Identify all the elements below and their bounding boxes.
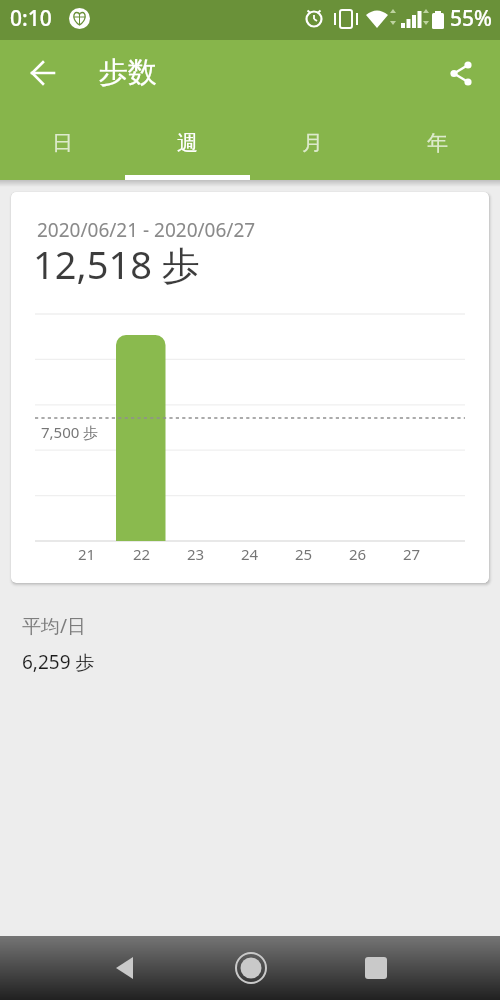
- staticText: 歩数: [99, 54, 157, 91]
- button[interactable]: 日: [0, 105, 125, 180]
- staticText: 日: [52, 130, 73, 156]
- staticText: 22: [133, 544, 151, 564]
- button[interactable]: [62, 936, 188, 1000]
- button[interactable]: [313, 936, 438, 1000]
- staticText: 年: [427, 130, 448, 156]
- button[interactable]: [188, 936, 313, 1000]
- staticText: 23: [187, 544, 205, 564]
- staticText: 月: [302, 130, 323, 156]
- staticText: 平均/日: [22, 613, 87, 639]
- staticText: 25: [295, 544, 313, 564]
- button[interactable]: 年: [375, 105, 500, 180]
- staticText: 55%: [450, 4, 492, 33]
- staticText: 6,259 歩: [22, 649, 95, 675]
- staticText: 12,518 歩: [33, 238, 200, 290]
- staticText: 2020/06/21 - 2020/06/27: [37, 217, 256, 243]
- staticText: 週: [177, 130, 198, 156]
- staticText: 0:10: [10, 4, 52, 33]
- staticText: 7,500 歩: [41, 422, 99, 442]
- staticText: 21: [78, 544, 96, 564]
- staticText: 27: [403, 544, 421, 564]
- staticText: 26: [349, 544, 367, 564]
- button[interactable]: [437, 49, 485, 97]
- button[interactable]: 月: [250, 105, 375, 180]
- staticText: 24: [241, 544, 259, 564]
- button[interactable]: 週: [125, 105, 250, 180]
- button[interactable]: [19, 49, 67, 97]
